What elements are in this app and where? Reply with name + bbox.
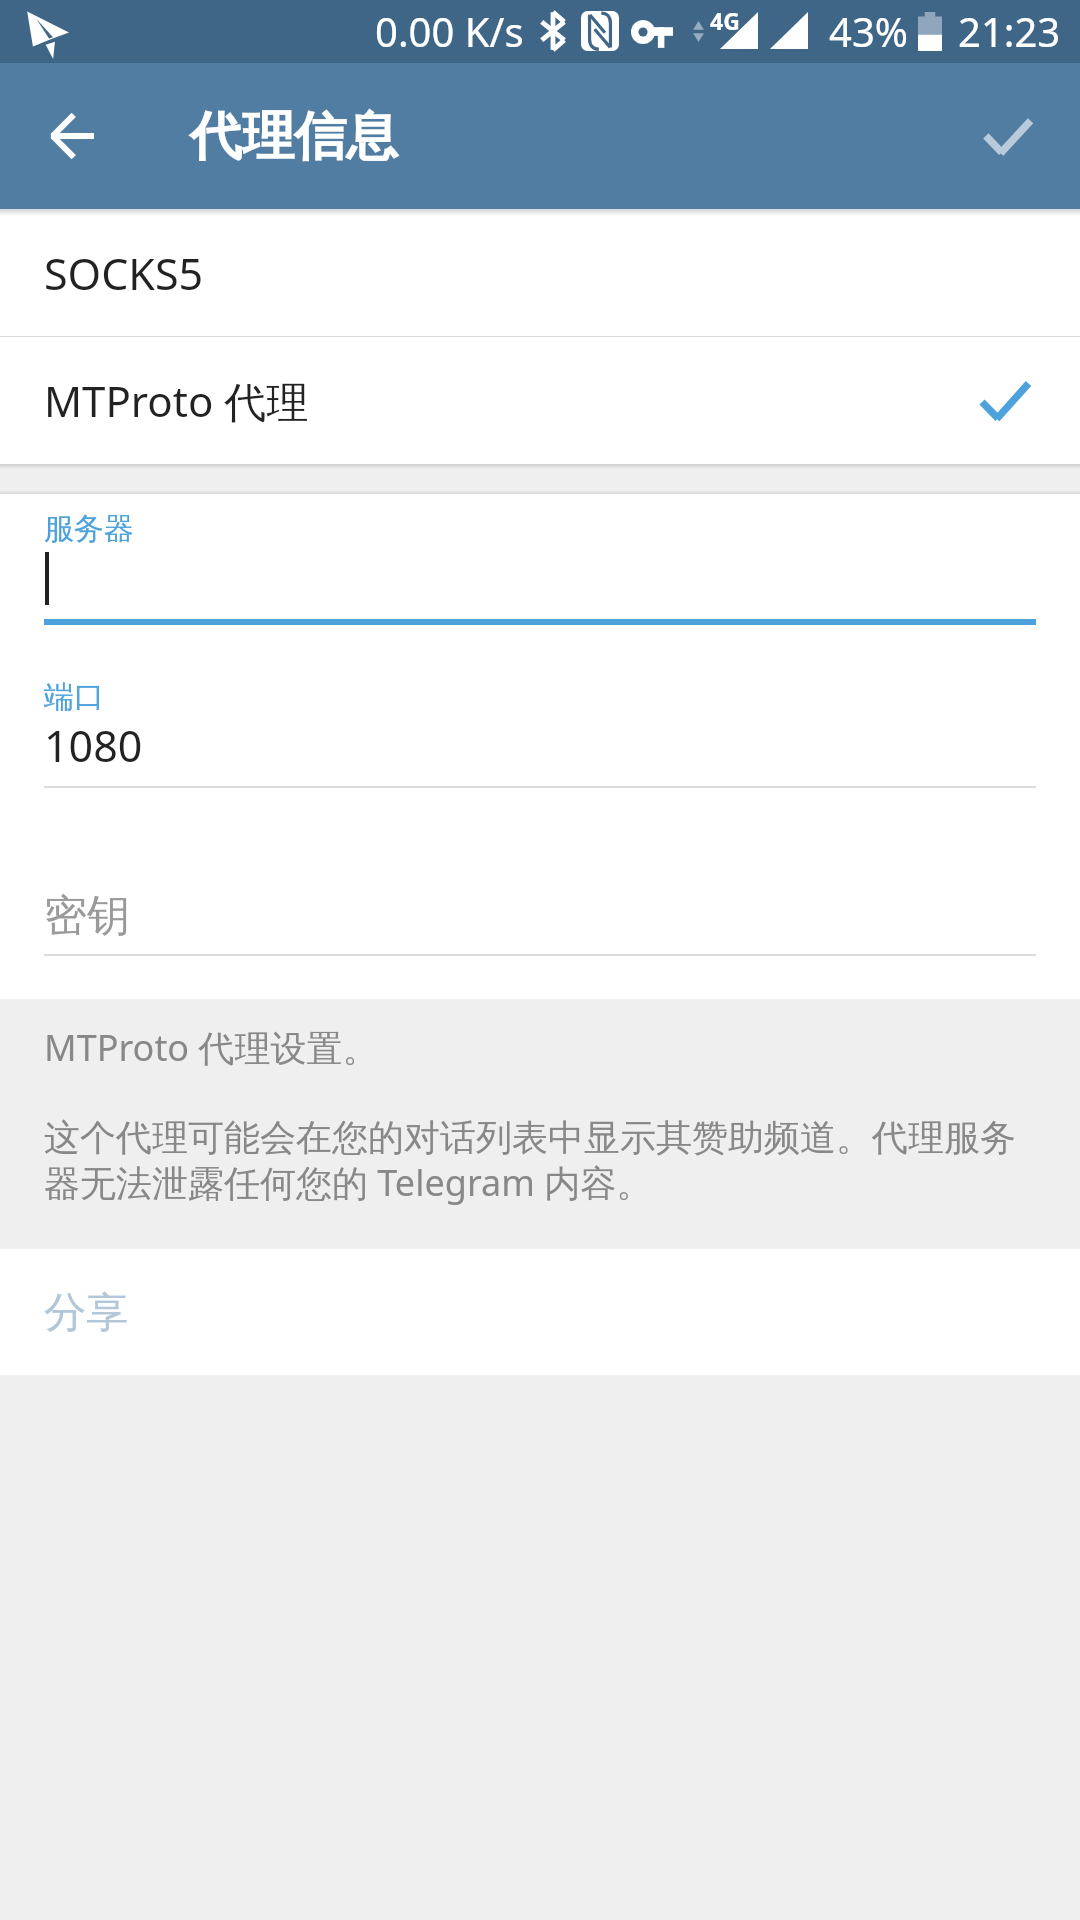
staticText: 1080 <box>44 716 143 775</box>
button[interactable]: Back <box>17 81 127 191</box>
button[interactable]: 服务器 <box>44 502 1036 626</box>
button[interactable]: MTProto 代理 <box>0 337 1080 464</box>
button[interactable]: SOCKS5 <box>0 209 1080 336</box>
staticText: 服务器 <box>44 510 134 548</box>
staticText: 21:23 <box>958 4 1061 58</box>
staticText: 0.00 K/s <box>375 4 524 58</box>
button[interactable]: 分享 <box>0 1249 1080 1375</box>
button[interactable]: 密钥 <box>44 870 1036 958</box>
staticText: 端口 <box>44 678 104 716</box>
staticText: 43% <box>829 4 908 58</box>
staticText: MTProto 代理设置。 <box>44 1023 379 1072</box>
staticText: 代理信息 <box>190 104 398 170</box>
staticText: 4G <box>710 5 740 36</box>
staticText: 这个代理可能会在您的对话列表中显示其赞助频道。代理服务器无法泄露任何您的 Tel… <box>44 1115 1040 1206</box>
staticText: MTProto 代理 <box>44 372 309 429</box>
staticText: SOCKS5 <box>44 244 204 303</box>
staticText: 密钥 <box>44 889 130 943</box>
button[interactable]: 端口 <box>44 670 1036 790</box>
button[interactable]: Save proxy <box>953 81 1063 191</box>
staticText: 分享 <box>44 1287 128 1340</box>
